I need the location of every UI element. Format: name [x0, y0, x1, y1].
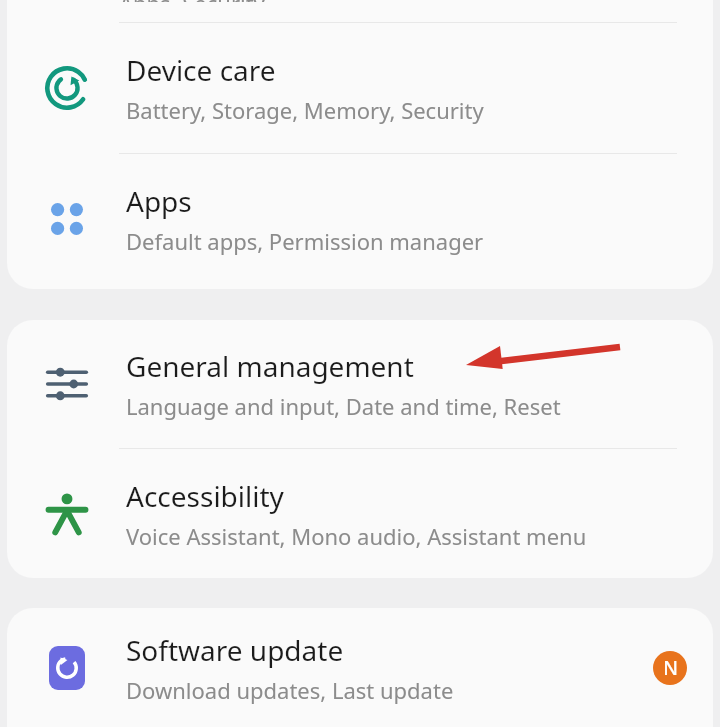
staticText: Language and input, Date and time, Reset	[126, 391, 561, 421]
button[interactable]: Accessibility	[7, 449, 713, 578]
button[interactable]: Device care	[7, 23, 713, 153]
staticText: Device care	[126, 51, 276, 89]
staticText: Default apps, Permission manager	[126, 226, 484, 256]
staticText: Apps	[126, 182, 192, 220]
staticText: Software update	[126, 631, 344, 669]
button[interactable]: Software update	[7, 608, 713, 727]
staticText: Accessibility	[126, 477, 284, 515]
staticText: Battery, Storage, Memory, Security	[126, 95, 484, 125]
staticText: Voice Assistant, Mono audio, Assistant m…	[126, 521, 587, 551]
button[interactable]: General management	[7, 320, 713, 448]
staticText: Download updates, Last update	[126, 675, 454, 705]
button[interactable]: Apps	[7, 154, 713, 284]
staticText: Apps, Security	[119, 0, 265, 2]
staticText: General management	[126, 347, 414, 385]
staticText: N	[663, 655, 678, 681]
